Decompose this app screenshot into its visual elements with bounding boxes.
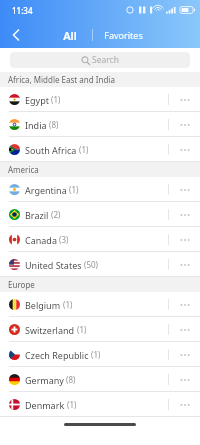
staticText: All — [63, 28, 77, 43]
button[interactable]: More options for United States — [169, 252, 200, 277]
staticText: (1) — [69, 184, 79, 195]
staticText: Africa, Middle East and India — [8, 74, 115, 85]
staticText: (3) — [59, 234, 69, 245]
button[interactable]: Back — [0, 22, 30, 48]
button[interactable]: More options for Czech Republic — [169, 342, 200, 367]
button[interactable]: More options for Egypt — [169, 87, 200, 112]
staticText: Europe — [8, 279, 35, 290]
button[interactable]: United States — [0, 252, 200, 277]
button[interactable]: More options for Argentina — [169, 177, 200, 202]
button[interactable]: More options for Germany — [169, 367, 200, 392]
staticText: Czech Republic — [25, 349, 89, 361]
staticText: Egypt — [25, 94, 49, 106]
button[interactable]: Switzerland — [0, 317, 200, 342]
staticText: (1) — [91, 349, 101, 360]
staticText: America — [8, 164, 39, 175]
button[interactable]: More options for Switzerland — [169, 317, 200, 342]
button[interactable]: Search — [10, 52, 190, 68]
button[interactable]: More options for Canada — [169, 227, 200, 252]
staticText: (8) — [49, 119, 59, 130]
button[interactable]: Favorites — [93, 22, 153, 48]
button[interactable]: More options for Brazil — [169, 202, 200, 227]
button[interactable]: All — [48, 22, 92, 48]
button[interactable]: Brazil — [0, 202, 200, 227]
button[interactable]: Canada — [0, 227, 200, 252]
staticText: Brazil — [25, 209, 49, 221]
staticText: Argentina — [25, 184, 67, 196]
button[interactable]: Czech Republic — [0, 342, 200, 367]
staticText: (1) — [67, 399, 77, 410]
button[interactable]: More options for India — [169, 112, 200, 137]
button[interactable]: More options for South Africa — [169, 137, 200, 162]
staticText: (50) — [84, 259, 98, 270]
staticText: Belgium — [25, 299, 61, 311]
staticText: United States — [25, 259, 82, 271]
staticText: (1) — [63, 299, 73, 310]
staticText: (1) — [51, 94, 61, 105]
staticText: South Africa — [25, 144, 77, 156]
staticText: Favorites — [104, 29, 143, 41]
button[interactable]: Belgium — [0, 292, 200, 317]
staticText: 11:34 — [12, 5, 33, 16]
button[interactable]: South Africa — [0, 137, 200, 162]
staticText: Switzerland — [25, 324, 75, 336]
staticText: Search — [92, 54, 119, 66]
staticText: India — [25, 119, 47, 131]
staticText: Denmark — [25, 399, 65, 411]
button[interactable]: India — [0, 112, 200, 137]
button[interactable]: Denmark — [0, 392, 200, 417]
button[interactable]: Argentina — [0, 177, 200, 202]
staticText: Germany — [25, 374, 64, 386]
staticText: (2) — [51, 209, 61, 220]
button[interactable]: More options for Denmark — [169, 392, 200, 417]
button[interactable]: Egypt — [0, 87, 200, 112]
button[interactable]: More options for Belgium — [169, 292, 200, 317]
staticText: Canada — [25, 234, 57, 246]
staticText: (1) — [79, 144, 89, 155]
staticText: (8) — [66, 374, 76, 385]
button[interactable]: Germany — [0, 367, 200, 392]
staticText: (1) — [77, 324, 87, 335]
